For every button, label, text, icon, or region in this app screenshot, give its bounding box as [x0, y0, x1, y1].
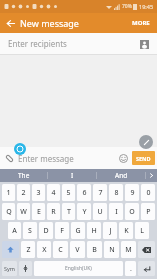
staticText: The — [18, 171, 30, 180]
button[interactable]: B — [87, 241, 102, 258]
staticText: I — [115, 207, 118, 217]
button[interactable]: S — [23, 222, 37, 239]
staticText: S — [28, 226, 32, 236]
button[interactable]: Delete — [138, 241, 155, 258]
staticText: 70% — [122, 3, 132, 10]
button[interactable]: Enter — [138, 261, 155, 276]
staticText: R — [51, 207, 56, 217]
staticText: SEND — [136, 155, 151, 162]
button[interactable]: N — [104, 241, 119, 258]
staticText: W — [20, 207, 27, 217]
staticText: U — [97, 207, 103, 217]
button[interactable]: . — [125, 261, 136, 276]
staticText: Enter recipients — [8, 38, 67, 49]
button[interactable]: Z — [21, 241, 35, 258]
button[interactable]: I — [109, 203, 123, 220]
staticText: MORE — [132, 19, 150, 27]
staticText: J — [109, 226, 112, 236]
staticText: H — [91, 226, 97, 236]
staticText: 5 — [66, 188, 71, 198]
staticText: I — [71, 171, 74, 180]
button[interactable]: Q — [2, 203, 15, 220]
button[interactable]: 6 — [77, 184, 91, 201]
button[interactable]: Attach — [0, 149, 18, 167]
staticText: O — [129, 207, 135, 217]
button[interactable]: 0 — [141, 184, 155, 201]
button[interactable]: MORE — [125, 15, 157, 31]
staticText: 1 — [6, 188, 11, 198]
button[interactable]: SEND — [132, 151, 155, 165]
button[interactable]: J — [103, 222, 117, 239]
button[interactable]: R — [47, 203, 60, 220]
button[interactable]: Back — [0, 13, 20, 33]
button[interactable]: Y — [77, 203, 91, 220]
staticText: 6 — [82, 188, 87, 198]
button[interactable]: L — [135, 222, 149, 239]
button[interactable]: Edit — [139, 135, 153, 149]
staticText: V — [75, 245, 80, 255]
button[interactable]: Enter recipients — [0, 33, 157, 54]
button[interactable]: I — [48, 169, 96, 182]
button[interactable]: G — [71, 222, 85, 239]
staticText: 8 — [114, 188, 119, 198]
staticText: N — [109, 245, 115, 255]
staticText: English(UK) — [65, 265, 92, 272]
staticText: F — [60, 226, 64, 236]
staticText: 4 — [51, 188, 56, 198]
button[interactable]: C — [53, 241, 68, 258]
button[interactable]: K — [119, 222, 133, 239]
staticText: Q — [6, 207, 12, 217]
button[interactable]: H — [87, 222, 101, 239]
button[interactable]: T — [62, 203, 75, 220]
button[interactable]: 7 — [93, 184, 107, 201]
button[interactable]: A — [8, 222, 21, 239]
staticText: Sym — [4, 265, 15, 272]
button[interactable]: More suggestions — [146, 169, 157, 182]
button[interactable]: E — [32, 203, 45, 220]
staticText: 2 — [21, 188, 26, 198]
staticText: Y — [82, 207, 87, 217]
button[interactable]: Sym — [2, 261, 17, 276]
staticText: 19:45 — [139, 3, 154, 10]
staticText: And — [115, 171, 128, 180]
button[interactable]: O — [125, 203, 139, 220]
button[interactable]: The — [0, 169, 47, 182]
staticText: Enter message — [18, 153, 74, 164]
button[interactable]: M — [121, 241, 136, 258]
button[interactable]: Add recipient from contacts — [134, 34, 154, 54]
staticText: 0 — [146, 188, 151, 198]
button[interactable]: F — [55, 222, 69, 239]
button[interactable]: Settings — [19, 261, 32, 276]
button[interactable]: D — [39, 222, 53, 239]
button[interactable]: 1 — [2, 184, 15, 201]
staticText: G — [75, 226, 81, 236]
staticText: X — [42, 245, 47, 255]
button[interactable]: Shift — [2, 241, 19, 258]
button[interactable]: W — [17, 203, 30, 220]
staticText: P — [146, 207, 151, 217]
staticText: M — [125, 245, 132, 255]
button[interactable]: 3 — [32, 184, 45, 201]
staticText: 7 — [98, 188, 103, 198]
staticText: K — [124, 226, 129, 236]
button[interactable]: 9 — [125, 184, 139, 201]
button[interactable]: 4 — [47, 184, 60, 201]
button[interactable]: 8 — [109, 184, 123, 201]
button[interactable]: And — [97, 169, 145, 182]
button[interactable]: V — [70, 241, 85, 258]
button[interactable]: X — [37, 241, 51, 258]
staticText: L — [140, 226, 144, 236]
staticText: C — [58, 245, 63, 255]
staticText: 3 — [36, 188, 41, 198]
button[interactable]: 2 — [17, 184, 30, 201]
button[interactable]: P — [141, 203, 155, 220]
staticText: B — [92, 245, 97, 255]
button[interactable]: English(UK) — [34, 261, 123, 276]
button[interactable]: Insert emoticon — [114, 149, 132, 167]
button[interactable]: 5 — [62, 184, 75, 201]
staticText: E — [37, 207, 41, 217]
button[interactable]: U — [93, 203, 107, 220]
staticText: 9 — [130, 188, 135, 198]
staticText: A — [12, 226, 17, 236]
staticText: T — [67, 207, 71, 217]
